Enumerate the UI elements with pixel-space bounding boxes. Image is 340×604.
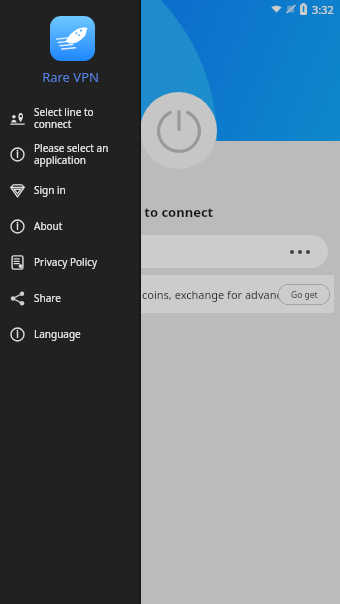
- button[interactable]: App logo: [50, 16, 95, 61]
- button[interactable]: Connect: [140, 92, 217, 169]
- button[interactable]: Privacy Policy: [0, 244, 141, 280]
- button[interactable]: Share: [0, 280, 141, 316]
- staticText: coins, exchange for advanced: [142, 287, 295, 302]
- button[interactable]: Please select an application: [0, 136, 141, 172]
- staticText: Select line to connect: [34, 105, 94, 131]
- staticText: Language: [34, 327, 81, 341]
- staticText: Go get: [291, 289, 318, 301]
- staticText: Click to connect: [110, 203, 214, 221]
- staticText: Please select an application: [34, 141, 109, 167]
- button[interactable]: Select line to connect: [0, 100, 141, 136]
- staticText: Rare VPN: [0, 68, 141, 86]
- staticText: Sign in: [34, 183, 66, 197]
- button[interactable]: About: [0, 208, 141, 244]
- button[interactable]: More options: [12, 235, 328, 268]
- staticText: Privacy Policy: [34, 255, 98, 269]
- button[interactable]: Language: [0, 316, 141, 352]
- button[interactable]: Go get: [278, 284, 330, 305]
- button[interactable]: Sign in: [0, 172, 141, 208]
- staticText: 3:32: [312, 2, 334, 17]
- staticText: Share: [34, 291, 61, 305]
- staticText: About: [34, 219, 63, 233]
- other: More options: [290, 250, 310, 254]
